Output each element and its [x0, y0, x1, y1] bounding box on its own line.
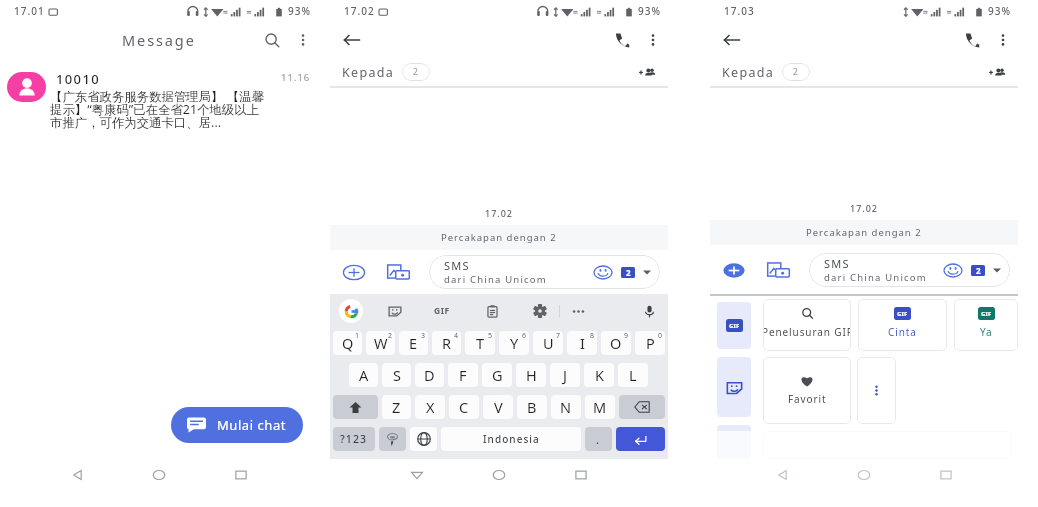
staticText: K [595, 365, 604, 385]
button[interactable]: F [448, 363, 478, 387]
button[interactable]: A [349, 363, 378, 387]
button[interactable]: Mulai chat [171, 407, 303, 443]
button[interactable]: X [415, 395, 445, 419]
button[interactable]: Add people [982, 58, 1012, 86]
button[interactable]: Indonesia [441, 427, 581, 451]
button[interactable]: Add attachment [719, 255, 749, 285]
button[interactable]: SMS [429, 255, 660, 289]
button[interactable]: M [585, 395, 615, 419]
button[interactable]: GIF [858, 299, 947, 351]
button[interactable]: ?123 [333, 427, 375, 451]
button[interactable]: More GIF categories [857, 357, 896, 424]
button[interactable]: . [585, 427, 612, 451]
button[interactable]: SMS [809, 253, 1010, 287]
staticText: ?123 [340, 432, 368, 446]
button[interactable]: K [584, 363, 614, 387]
button[interactable]: R [432, 331, 461, 355]
button[interactable]: More options [638, 25, 668, 55]
staticText: H [526, 365, 537, 385]
button[interactable]: Favorit [763, 357, 851, 424]
staticText: Penelusuran GIF [763, 325, 851, 339]
button[interactable]: S [382, 363, 411, 387]
button[interactable]: Kepada [710, 58, 1018, 86]
button[interactable]: T [465, 331, 495, 355]
button[interactable]: Search [256, 24, 288, 56]
button[interactable]: Kepada [330, 58, 668, 86]
button[interactable]: J [550, 363, 580, 387]
button[interactable]: Keyboard settings [528, 299, 552, 323]
button[interactable]: W [366, 331, 395, 355]
button[interactable]: Emoji [943, 260, 963, 280]
button[interactable]: O [601, 331, 631, 355]
button[interactable]: Clipboard [480, 299, 504, 323]
button[interactable]: Home [478, 461, 520, 489]
button[interactable]: Emoji [593, 262, 613, 282]
button[interactable]: Backspace [619, 395, 665, 419]
staticText: 17.02 [344, 4, 375, 18]
button[interactable]: N [551, 395, 581, 419]
button[interactable]: More options [988, 25, 1018, 55]
button[interactable]: V [483, 395, 513, 419]
button[interactable]: Z [382, 395, 411, 419]
button[interactable]: Change language [410, 427, 437, 451]
button[interactable]: More options [288, 25, 318, 55]
button[interactable]: C [449, 395, 479, 419]
staticText: 2 [388, 331, 393, 341]
button[interactable]: Google search [339, 299, 363, 323]
button[interactable]: E [399, 331, 428, 355]
button[interactable]: 10010 [0, 58, 318, 139]
button[interactable]: Emoji [379, 427, 406, 451]
button[interactable]: Home [843, 461, 885, 489]
button[interactable]: Back [336, 24, 368, 56]
button[interactable]: P [635, 331, 665, 355]
button[interactable]: GIF [954, 299, 1018, 351]
button[interactable]: Recents [220, 461, 262, 489]
button[interactable]: B [517, 395, 547, 419]
button[interactable]: Add attachment [339, 257, 369, 287]
button[interactable]: Back [56, 461, 98, 489]
button[interactable]: I [567, 331, 597, 355]
button[interactable]: Call [606, 24, 638, 56]
button[interactable]: Back [716, 24, 748, 56]
button[interactable]: Add people [632, 58, 662, 86]
button[interactable]: More options [566, 299, 590, 323]
staticText: SMS [444, 258, 470, 273]
button[interactable]: Back [396, 461, 438, 489]
button[interactable]: Camera [383, 257, 413, 287]
button[interactable]: Stickers [383, 299, 407, 323]
staticText: . [596, 432, 601, 447]
button[interactable]: Shift [333, 395, 378, 419]
button[interactable]: GIF [430, 299, 454, 323]
staticText: D [424, 365, 435, 385]
button[interactable]: Enter [616, 427, 665, 451]
button[interactable]: L [618, 363, 648, 387]
button[interactable]: Call [956, 24, 988, 56]
staticText: 2 [413, 66, 419, 78]
staticText: 2 [793, 66, 799, 78]
staticText: S [393, 365, 401, 385]
button[interactable]: Camera [763, 255, 793, 285]
button[interactable]: Stickers tab [717, 357, 751, 417]
button[interactable]: Recents [560, 461, 602, 489]
button[interactable]: Q [333, 331, 362, 355]
staticText: 【广东省政务服务数据管理局】 【温馨提示】“粤康码”已在全省21个地级以上市推广… [50, 88, 269, 131]
staticText: B [527, 397, 537, 417]
button[interactable]: Home [138, 461, 180, 489]
button[interactable]: Location tab [717, 425, 751, 459]
button[interactable]: H [516, 363, 546, 387]
button[interactable]: D [415, 363, 444, 387]
staticText: Ya [980, 325, 993, 339]
button[interactable]: Voice input [637, 299, 661, 323]
button[interactable]: G [482, 363, 512, 387]
staticText: L [629, 365, 637, 385]
button[interactable]: U [533, 331, 563, 355]
button[interactable]: Recents [925, 461, 967, 489]
staticText: 6 [522, 331, 527, 341]
button[interactable]: GIF tab [717, 302, 751, 349]
button[interactable]: Y [499, 331, 529, 355]
button[interactable]: Back [761, 461, 803, 489]
staticText: W [374, 333, 388, 353]
staticText: I [580, 333, 585, 353]
staticText: P [646, 333, 655, 353]
button[interactable]: Penelusuran GIF [763, 299, 851, 351]
